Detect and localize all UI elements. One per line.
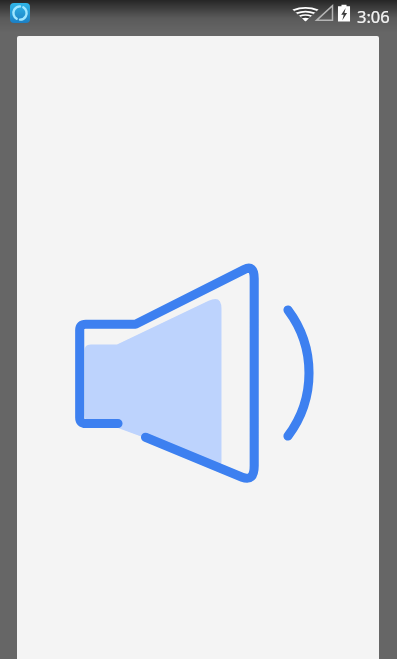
button[interactable]: App notification — [10, 3, 30, 23]
staticText: 3:06 — [357, 5, 390, 27]
